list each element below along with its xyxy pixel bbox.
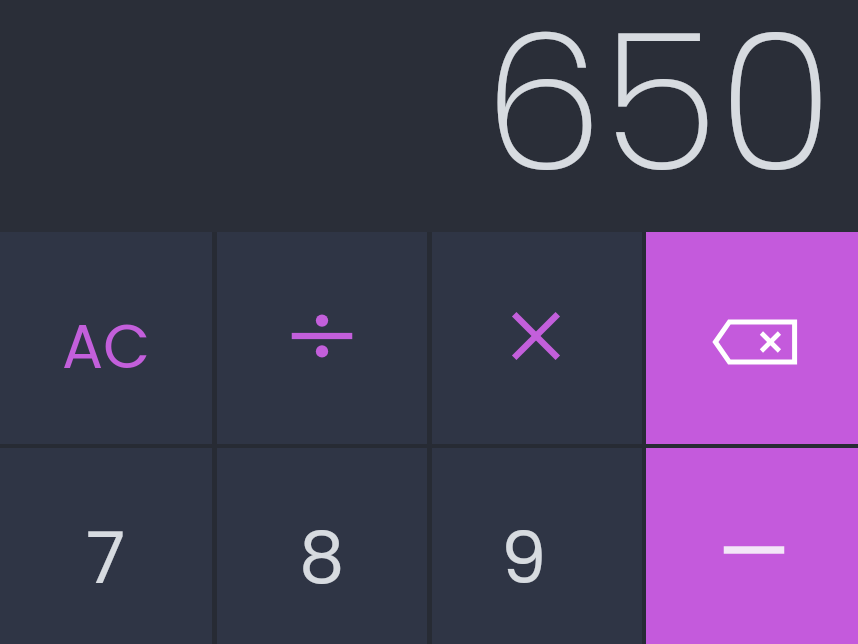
button[interactable]: Divide — [217, 232, 427, 444]
button[interactable]: All clear — [0, 232, 212, 444]
button[interactable]: 9 — [432, 448, 642, 644]
staticText: 650 — [484, 0, 834, 235]
staticText: 7 — [86, 507, 126, 608]
button[interactable]: 8 — [217, 448, 427, 644]
staticText: 8 — [299, 507, 345, 608]
button[interactable]: Multiply — [432, 232, 642, 444]
button[interactable]: Backspace — [646, 232, 858, 444]
button[interactable]: 7 — [0, 448, 212, 644]
staticText: 9 — [501, 507, 547, 608]
staticText: AC — [62, 304, 151, 389]
button[interactable]: Minus — [646, 448, 858, 644]
